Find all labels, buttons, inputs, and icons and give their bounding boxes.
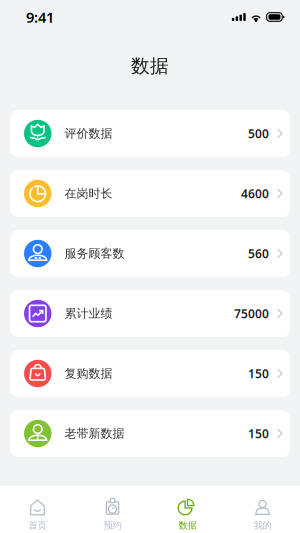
button[interactable]: 数据 — [150, 483, 225, 533]
staticText: 560 — [248, 245, 269, 261]
staticText: 老带新数据 — [64, 426, 124, 441]
button[interactable]: 服务顾客数 — [10, 230, 290, 277]
staticText: 首页 — [28, 520, 46, 531]
staticText: 9:41 — [26, 7, 54, 27]
button[interactable]: 评价数据 — [10, 110, 290, 157]
staticText: 服务顾客数 — [64, 246, 124, 261]
staticText: 数据 — [178, 520, 196, 531]
button[interactable]: 复购数据 — [10, 350, 290, 397]
staticText: 评价数据 — [64, 126, 112, 141]
button[interactable]: 预约 — [75, 483, 150, 533]
button[interactable]: 我的 — [225, 483, 300, 533]
staticText: 150 — [248, 365, 269, 381]
staticText: 我的 — [253, 520, 271, 531]
staticText: 预约 — [103, 520, 121, 531]
staticText: 4600 — [241, 185, 269, 201]
button[interactable]: 在岗时长 — [10, 170, 290, 217]
staticText: 500 — [248, 125, 269, 141]
staticText: 复购数据 — [64, 366, 112, 381]
staticText: 累计业绩 — [64, 306, 112, 321]
staticText: 数据 — [131, 54, 169, 77]
staticText: 75000 — [234, 305, 269, 321]
button[interactable]: 老带新数据 — [10, 410, 290, 457]
button[interactable]: 累计业绩 — [10, 290, 290, 337]
staticText: 在岗时长 — [64, 186, 112, 201]
staticText: 150 — [248, 425, 269, 441]
button[interactable]: 首页 — [0, 483, 75, 533]
